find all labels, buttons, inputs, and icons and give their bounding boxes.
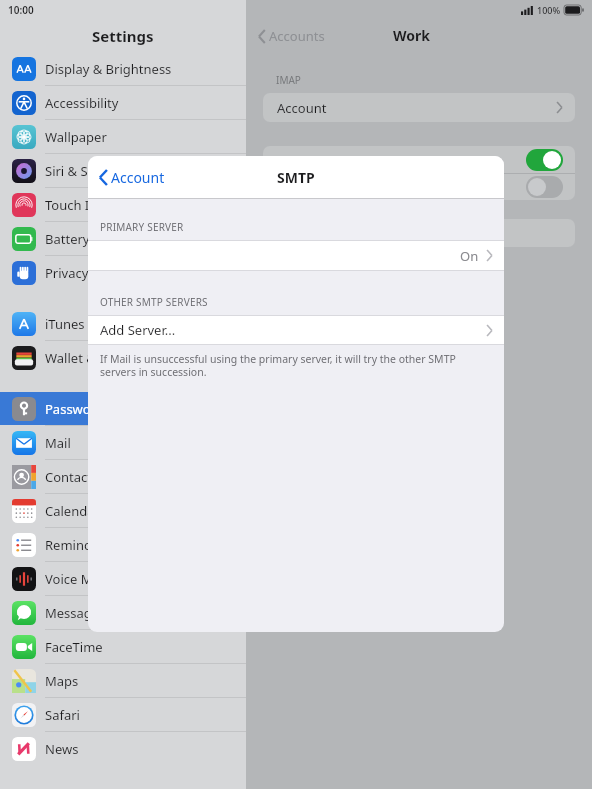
- button[interactable]: Voice Memos: [0, 562, 246, 595]
- button[interactable]: On: [88, 241, 504, 270]
- button[interactable]: Passwords & Accounts: [0, 392, 246, 425]
- button[interactable]: News: [0, 732, 246, 765]
- staticText: Contacts: [45, 468, 99, 486]
- staticText: On: [460, 247, 479, 265]
- button[interactable]: Accounts: [258, 27, 325, 45]
- button[interactable]: Mail: [0, 426, 246, 459]
- button[interactable]: Wallet & Apple Pay: [0, 341, 246, 374]
- button[interactable]: Display & Brightness: [0, 52, 246, 85]
- staticText: Siri & Search: [45, 162, 122, 180]
- button[interactable]: Messages: [0, 596, 246, 629]
- button[interactable]: Reminders: [0, 528, 246, 561]
- button[interactable]: Touch ID & Passcode: [0, 188, 246, 221]
- button[interactable]: Account: [263, 93, 575, 122]
- button[interactable]: FaceTime: [0, 630, 246, 663]
- staticText: Voice Memos: [45, 570, 127, 588]
- staticText: Account: [111, 168, 165, 187]
- staticText: OTHER SMTP SERVERS: [100, 295, 208, 309]
- staticText: Settings: [92, 26, 154, 46]
- button[interactable]: Safari: [0, 698, 246, 731]
- button[interactable]: Accessibility: [0, 86, 246, 119]
- staticText: Messages: [45, 604, 106, 622]
- staticText: Account: [277, 99, 327, 117]
- staticText: Display & Brightness: [45, 60, 172, 78]
- button[interactable]: Maps: [0, 664, 246, 697]
- staticText: Touch ID & Passcode: [45, 196, 173, 214]
- staticText: FaceTime: [45, 638, 103, 656]
- staticText: IMAP: [276, 73, 301, 87]
- button[interactable]: Battery: [0, 222, 246, 255]
- button[interactable]: Privacy: [0, 256, 246, 289]
- staticText: Add Server...: [100, 321, 176, 339]
- button[interactable]: Contacts: [0, 460, 246, 493]
- staticText: News: [45, 740, 79, 758]
- staticText: Calendar: [45, 502, 100, 520]
- staticText: Accounts: [269, 27, 325, 45]
- staticText: Privacy: [45, 264, 89, 282]
- button[interactable]: Wallpaper: [0, 120, 246, 153]
- staticText: 10:00: [8, 3, 34, 17]
- button[interactable]: Account: [99, 168, 165, 187]
- staticText: Safari: [45, 706, 80, 724]
- staticText: If Mail is unsuccessful using the primar…: [100, 352, 490, 379]
- button[interactable]: Toggle off: [526, 176, 563, 198]
- staticText: 100%: [537, 4, 561, 16]
- staticText: Wallet & Apple Pay: [45, 349, 160, 367]
- staticText: Accessibility: [45, 94, 119, 112]
- button[interactable]: iTunes & App Store: [0, 307, 246, 340]
- button[interactable]: Calendar: [0, 494, 246, 527]
- button[interactable]: Add Server...: [88, 316, 504, 344]
- staticText: Work: [393, 26, 430, 45]
- staticText: iTunes & App Store: [45, 315, 161, 333]
- button[interactable]: Siri & Search: [0, 154, 246, 187]
- staticText: PRIMARY SERVER: [100, 220, 184, 234]
- staticText: Wallpaper: [45, 128, 107, 146]
- button[interactable]: Toggle on: [526, 149, 563, 171]
- staticText: Reminders: [45, 536, 111, 554]
- staticText: Battery: [45, 230, 90, 248]
- staticText: SMTP: [277, 168, 315, 187]
- button[interactable]: [263, 219, 575, 247]
- staticText: Maps: [45, 672, 79, 690]
- staticText: Passwords & Accounts: [45, 400, 182, 418]
- staticText: Mail: [45, 434, 71, 452]
